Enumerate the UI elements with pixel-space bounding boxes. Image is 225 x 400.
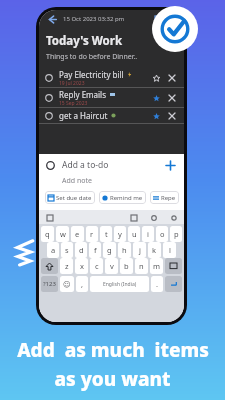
staticText: c — [95, 261, 99, 271]
staticText: , — [81, 279, 84, 289]
staticText: q — [45, 229, 50, 239]
button[interactable]: p — [170, 226, 182, 242]
button[interactable]: Delete — [166, 110, 178, 122]
staticText: r — [90, 229, 94, 239]
staticText: f — [94, 245, 97, 255]
button[interactable]: r — [86, 226, 98, 242]
button[interactable]: Enter — [165, 276, 182, 292]
button[interactable]: n — [135, 258, 148, 274]
button[interactable]: i — [142, 226, 154, 242]
staticText: a — [51, 245, 56, 255]
button[interactable]: h — [118, 242, 131, 258]
staticText: y — [118, 229, 122, 239]
button[interactable]: c — [90, 258, 103, 274]
staticText: Remind me — [110, 194, 143, 202]
staticText: i — [147, 229, 149, 239]
button[interactable]: u — [128, 226, 140, 242]
button[interactable]: x — [75, 258, 88, 274]
staticText: Set due date — [56, 194, 92, 202]
staticText: s — [65, 245, 69, 255]
button[interactable]: Back — [45, 12, 59, 26]
button[interactable]: t — [100, 226, 112, 242]
staticText: u — [132, 229, 137, 239]
button[interactable]: get a Haircut — [39, 108, 184, 124]
staticText: 19 Jul 2023 — [59, 80, 85, 87]
button[interactable]: Star — [150, 72, 162, 84]
button[interactable]: e — [71, 226, 84, 242]
staticText: Repe — [161, 194, 176, 202]
staticText: b — [124, 261, 129, 271]
staticText: 15 Oct 2023 03:32 pm — [63, 15, 125, 23]
button[interactable]: j — [133, 242, 146, 258]
button[interactable]: Attach — [152, 13, 164, 25]
staticText: Today's Work — [46, 33, 123, 49]
staticText: Add a to-do — [62, 159, 109, 171]
staticText: get a Haircut — [59, 110, 108, 121]
staticText: l — [169, 245, 171, 255]
button[interactable]: q — [41, 226, 54, 242]
button[interactable]: f — [89, 242, 101, 258]
button[interactable]: s — [61, 242, 73, 258]
staticText: p — [174, 229, 179, 239]
button[interactable]: Repe — [150, 191, 179, 204]
button[interactable]: , — [76, 276, 88, 292]
button[interactable]: o — [156, 226, 168, 242]
staticText: k — [152, 245, 157, 255]
button[interactable]: ☺ — [60, 276, 74, 292]
staticText: . — [156, 279, 159, 289]
button[interactable]: Delete — [166, 72, 178, 84]
button[interactable]: k — [148, 242, 161, 258]
button[interactable]: Set due date — [45, 191, 95, 204]
staticText: o — [160, 229, 165, 239]
staticText: d — [79, 245, 84, 255]
button[interactable]: English (India) — [90, 276, 149, 292]
button[interactable]: Shift — [41, 258, 58, 274]
staticText: as you want — [54, 366, 171, 392]
staticText: ☺ — [63, 280, 71, 289]
staticText: t — [105, 229, 108, 239]
button[interactable]: Star — [150, 92, 162, 104]
button[interactable]: Clipboard — [128, 212, 139, 223]
button[interactable]: m — [150, 258, 163, 274]
button[interactable]: Numbers — [41, 276, 58, 292]
staticText: English (India) — [103, 281, 137, 288]
button[interactable]: Add — [163, 158, 177, 172]
staticText: Pay Electricity bill — [59, 69, 124, 80]
button[interactable]: Search — [168, 212, 179, 223]
button[interactable]: v — [105, 258, 118, 274]
button[interactable]: l — [163, 242, 176, 258]
button[interactable]: . — [151, 276, 163, 292]
button[interactable]: z — [60, 258, 73, 274]
button[interactable]: Backspace — [165, 258, 182, 274]
staticText: h — [122, 245, 127, 255]
button[interactable]: w — [56, 226, 69, 242]
button[interactable]: Apps — [44, 212, 55, 223]
staticText: z — [65, 261, 69, 271]
button[interactable]: Add note — [62, 176, 92, 186]
staticText: j — [139, 245, 141, 255]
staticText: ?123 — [43, 280, 56, 288]
staticText: w — [60, 229, 66, 239]
button[interactable]: Voice — [148, 212, 159, 223]
staticText: e — [75, 229, 80, 239]
staticText: Things to do before Dinner.. — [46, 52, 138, 62]
button[interactable]: b — [120, 258, 133, 274]
button[interactable]: Add a to-do — [46, 154, 177, 176]
button[interactable]: y — [114, 226, 126, 242]
button[interactable]: d — [75, 242, 87, 258]
button[interactable]: Pay Electricity bill — [39, 68, 184, 88]
staticText: x — [80, 261, 84, 271]
button[interactable]: Star — [150, 110, 162, 122]
staticText: Reply Emails — [59, 89, 107, 100]
button[interactable]: Delete — [166, 92, 178, 104]
button[interactable]: a — [47, 242, 59, 258]
button[interactable]: Reply Emails — [39, 88, 184, 108]
staticText: v — [110, 261, 114, 271]
staticText: n — [139, 261, 144, 271]
button[interactable]: g — [103, 242, 116, 258]
staticText: m — [153, 261, 161, 271]
staticText: Add as much items — [17, 337, 209, 363]
staticText: 15 Sep 2023 — [59, 100, 88, 107]
button[interactable]: Remind me — [99, 191, 146, 204]
button[interactable]: App icon — [152, 6, 198, 52]
